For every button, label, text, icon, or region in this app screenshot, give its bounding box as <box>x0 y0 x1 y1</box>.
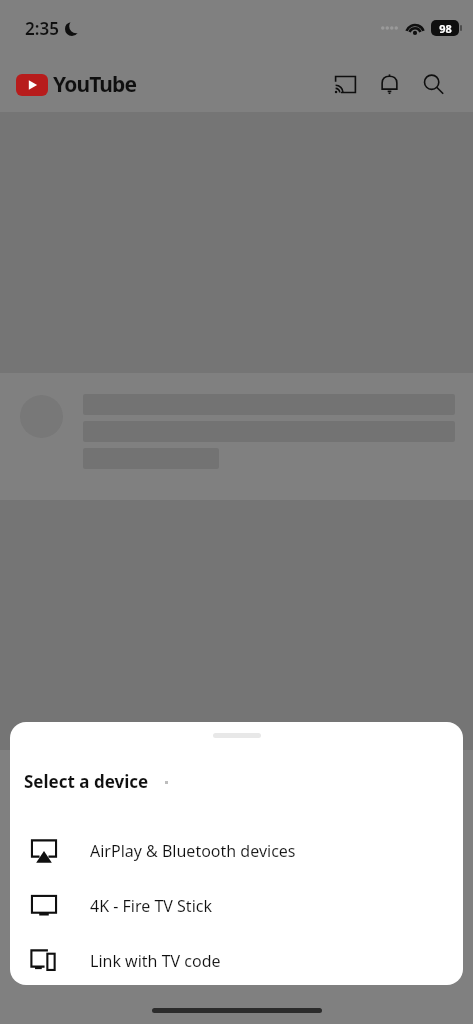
staticText: YouTube <box>53 70 137 99</box>
button[interactable]: Search <box>411 62 455 106</box>
button[interactable]: Cast <box>323 62 367 106</box>
staticText: 98 <box>439 21 452 36</box>
staticText: AirPlay & Bluetooth devices <box>90 840 296 862</box>
button[interactable]: YouTube <box>16 70 137 99</box>
staticText: Link with TV code <box>90 950 221 972</box>
button[interactable]: Link with TV code <box>10 935 463 985</box>
button[interactable]: Notifications <box>367 62 411 106</box>
staticText: 2:35 <box>25 17 59 40</box>
button[interactable]: AirPlay & Bluetooth devices <box>10 825 463 877</box>
staticText: 4K - Fire TV Stick <box>90 895 213 917</box>
staticText: Select a device <box>24 770 149 793</box>
button[interactable]: 4K - Fire TV Stick <box>10 880 463 932</box>
